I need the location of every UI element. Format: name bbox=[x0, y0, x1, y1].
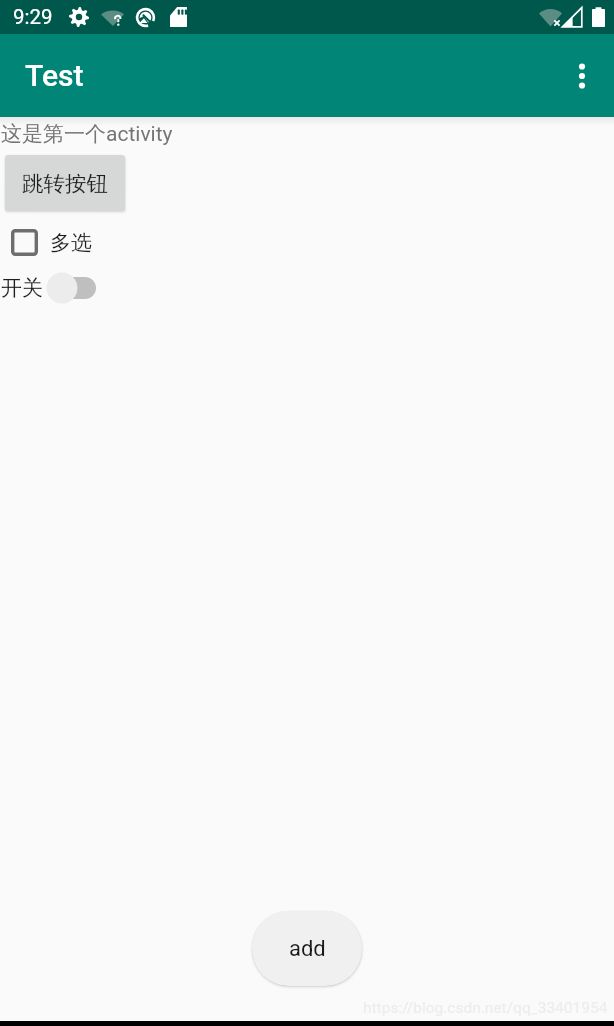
staticText: 这是第一个activity bbox=[1, 121, 173, 147]
staticText: 开关 bbox=[1, 275, 43, 301]
staticText: 跳转按钮 bbox=[22, 170, 108, 197]
button[interactable]: 多选 bbox=[11, 229, 92, 256]
button[interactable]: add bbox=[252, 911, 362, 986]
button[interactable]: 跳转按钮 bbox=[5, 155, 125, 211]
staticText: add bbox=[289, 936, 326, 962]
staticText: https://blog.csdn.net/qq_33401954 bbox=[363, 999, 608, 1017]
staticText: 多选 bbox=[50, 230, 92, 256]
staticText: 9:29 bbox=[13, 5, 53, 29]
button[interactable]: More options bbox=[558, 52, 606, 100]
staticText: Test bbox=[25, 58, 84, 93]
button[interactable]: 开关 bbox=[1, 271, 96, 305]
